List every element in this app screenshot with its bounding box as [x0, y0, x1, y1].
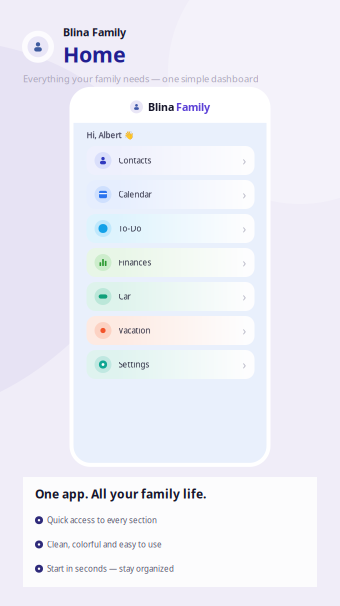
staticText: Quick access to every section: [47, 515, 157, 525]
staticText: ›: [242, 152, 246, 168]
staticText: Blina: [148, 100, 174, 114]
staticText: ›: [242, 186, 246, 202]
staticText: Finances: [118, 257, 151, 268]
staticText: Start in seconds — stay organized: [47, 563, 174, 574]
button[interactable]: Contacts: [86, 146, 254, 175]
staticText: Clean, colorful and easy to use: [47, 539, 162, 550]
staticText: Calendar: [118, 189, 151, 200]
staticText: Car: [118, 291, 130, 302]
staticText: ›: [242, 322, 246, 338]
staticText: One app. All your family life.: [35, 486, 206, 502]
button[interactable]: Car: [86, 282, 254, 311]
staticText: Vacation: [118, 325, 150, 336]
staticText: Contacts: [118, 155, 151, 166]
button[interactable]: Finances: [86, 248, 254, 277]
staticText: Family: [176, 100, 210, 114]
staticText: ›: [242, 356, 246, 372]
button[interactable]: Vacation: [86, 316, 254, 345]
staticText: Settings: [118, 359, 149, 370]
button[interactable]: Settings: [86, 350, 254, 379]
staticText: Blina Family: [63, 25, 126, 39]
staticText: Home: [63, 40, 126, 68]
button[interactable]: Calendar: [86, 180, 254, 209]
button[interactable]: To-Do: [86, 214, 254, 243]
staticText: To-Do: [118, 223, 141, 234]
staticText: ›: [242, 288, 246, 304]
staticText: Hi, Albert 👋: [86, 130, 133, 140]
staticText: ›: [242, 254, 246, 270]
staticText: ›: [242, 220, 246, 236]
staticText: Everything your family needs — one simpl…: [23, 72, 259, 85]
